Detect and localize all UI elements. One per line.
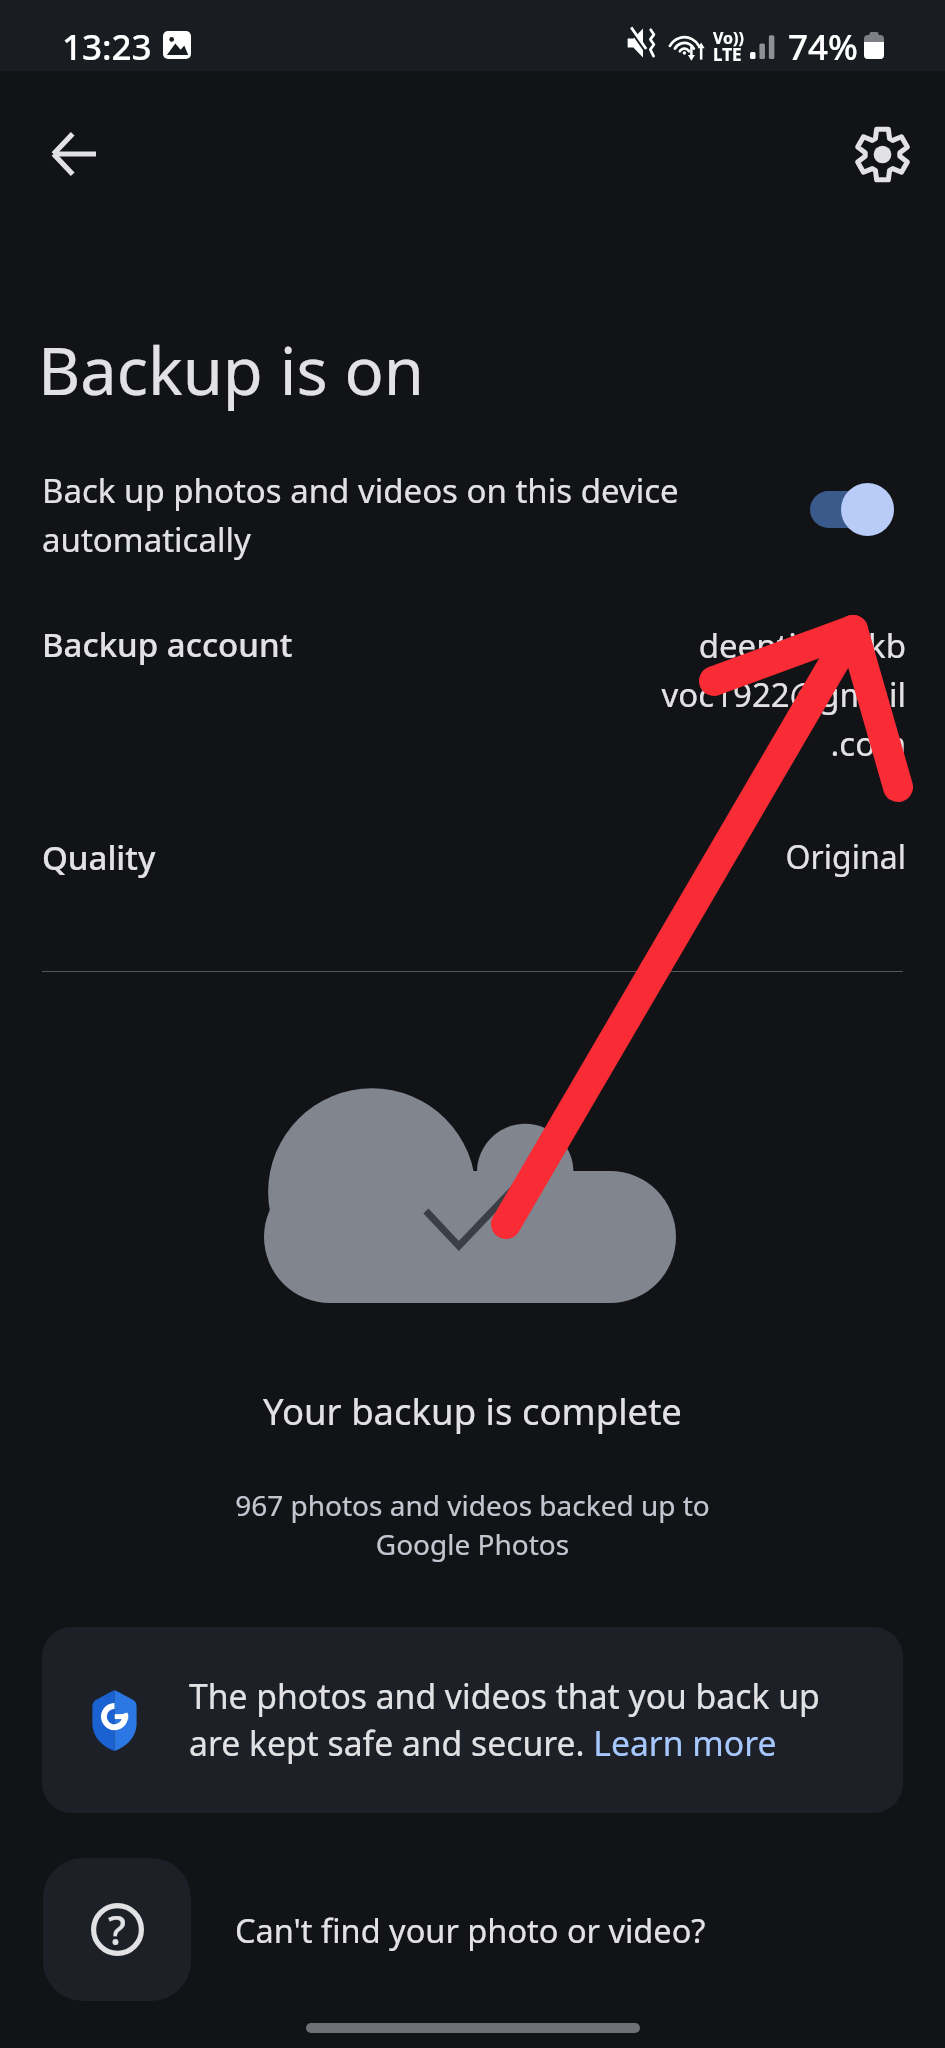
staticText: Your backup is complete [0,1386,945,1436]
button[interactable]: Back up photos and videos on this device… [0,468,945,578]
staticText: Can't find your photo or video? [235,1908,706,1952]
staticText: 74% [788,23,858,71]
button[interactable]: Backup account [0,610,945,790]
button[interactable]: The photos and videos that you back up a… [42,1627,903,1813]
staticText: Backup is on [38,326,424,415]
staticText: 13:23 [62,23,152,71]
staticText: The photos and videos that you back up a… [189,1673,854,1766]
button[interactable]: Quality [0,823,945,895]
staticText: LTE [713,43,742,66]
staticText: ? [108,1902,126,1956]
staticText: deeptinathkb voc1922@gmail .com [646,623,906,766]
button[interactable]: Back up photos and videos toggle [810,482,894,536]
staticText: Quality [42,835,156,880]
staticText: Back up photos and videos on this device… [42,468,682,561]
staticText: 967 photos and videos backed up to Googl… [200,1486,745,1563]
staticText: Backup account [42,622,293,667]
staticText: Original [660,835,906,879]
button[interactable]: Back [32,112,116,196]
button[interactable]: Settings [840,112,924,196]
button[interactable]: ? [0,1858,945,2001]
staticText: Vo)) [713,27,744,49]
